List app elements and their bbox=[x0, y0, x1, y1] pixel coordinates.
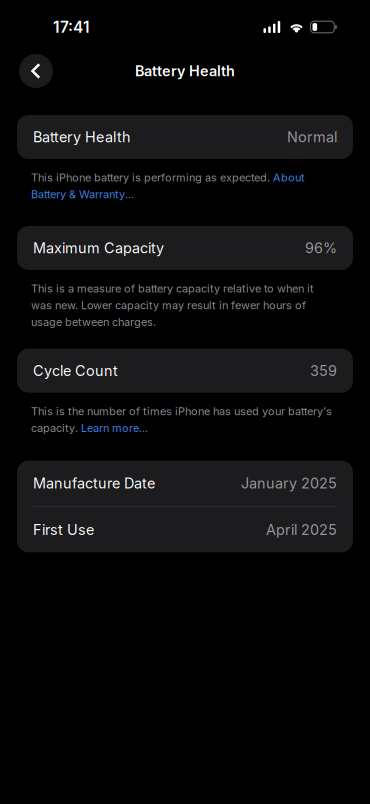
button[interactable]: Cycle Count bbox=[17, 349, 353, 393]
staticText: 96% bbox=[305, 239, 337, 257]
staticText: Maximum Capacity bbox=[33, 239, 164, 257]
staticText: This iPhone battery is performing as exp… bbox=[31, 171, 305, 201]
staticText: This is the number of times iPhone has u… bbox=[31, 405, 332, 435]
staticText: This is a measure of battery capacity re… bbox=[31, 282, 314, 329]
staticText: Manufacture Date bbox=[33, 475, 155, 492]
button[interactable]: Manufacture Date bbox=[17, 461, 353, 506]
staticText: First Use bbox=[33, 521, 94, 538]
staticText: Battery Health bbox=[33, 128, 131, 146]
staticText: 359 bbox=[310, 362, 337, 379]
staticText: Normal bbox=[287, 128, 337, 146]
staticText: 17:41 bbox=[53, 18, 90, 36]
button[interactable]: Back bbox=[19, 54, 53, 88]
button[interactable]: First Use bbox=[17, 507, 353, 552]
button[interactable]: Battery Health bbox=[17, 115, 353, 159]
staticText: January 2025 bbox=[241, 475, 337, 492]
button[interactable]: Maximum Capacity bbox=[17, 226, 353, 270]
staticText: Battery Health bbox=[135, 62, 235, 80]
staticText: Cycle Count bbox=[33, 362, 118, 379]
staticText: April 2025 bbox=[266, 521, 337, 538]
